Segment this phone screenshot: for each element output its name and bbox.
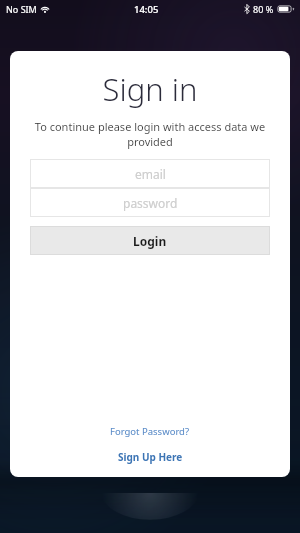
staticText: 80 %: [253, 3, 274, 15]
staticText: Sign Up Here: [118, 450, 183, 464]
button[interactable]: Forgot Password?: [102, 423, 198, 440]
button[interactable]: password: [30, 188, 270, 217]
button[interactable]: email: [30, 159, 270, 188]
staticText: 14:05: [134, 3, 159, 16]
staticText: Login: [133, 233, 167, 249]
staticText: No SIM: [6, 3, 37, 15]
staticText: Forgot Password?: [110, 425, 190, 438]
button[interactable]: Sign Up Here: [110, 448, 191, 466]
staticText: password: [123, 195, 178, 211]
staticText: Sign in: [10, 68, 290, 110]
staticText: email: [135, 166, 166, 182]
button[interactable]: Login: [30, 226, 270, 255]
staticText: To continue please login with access dat…: [27, 119, 273, 149]
